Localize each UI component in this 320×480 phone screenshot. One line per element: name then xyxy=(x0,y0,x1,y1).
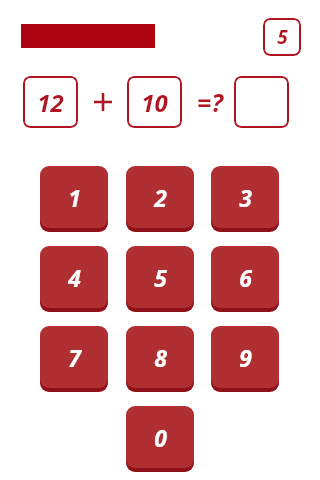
button[interactable]: 6 xyxy=(211,246,279,312)
staticText: 5 xyxy=(277,24,288,50)
button[interactable]: 3 xyxy=(211,166,279,232)
button[interactable]: 12 xyxy=(23,76,78,128)
staticText: 1 xyxy=(68,182,81,213)
staticText: 10 xyxy=(141,86,168,119)
staticText: 5 xyxy=(154,262,167,293)
button[interactable]: 5 xyxy=(263,18,301,56)
staticText: 9 xyxy=(239,342,252,373)
button[interactable]: 0 xyxy=(126,406,194,472)
button[interactable]: 1 xyxy=(40,166,108,232)
button[interactable]: 9 xyxy=(211,326,279,392)
button[interactable]: 2 xyxy=(126,166,194,232)
staticText: 8 xyxy=(154,342,167,373)
button[interactable]: 10 xyxy=(127,76,182,128)
button[interactable]: Answer xyxy=(234,76,289,128)
staticText: =? xyxy=(197,85,223,119)
button[interactable]: 8 xyxy=(126,326,194,392)
staticText: 3 xyxy=(239,182,252,213)
staticText: 7 xyxy=(68,342,81,373)
button[interactable]: 4 xyxy=(40,246,108,312)
button[interactable]: 7 xyxy=(40,326,108,392)
staticText: 0 xyxy=(154,422,167,453)
staticText: 6 xyxy=(239,262,252,293)
staticText: 2 xyxy=(154,182,167,213)
staticText: 4 xyxy=(68,262,81,293)
button[interactable]: 5 xyxy=(126,246,194,312)
staticText: 12 xyxy=(37,86,64,119)
